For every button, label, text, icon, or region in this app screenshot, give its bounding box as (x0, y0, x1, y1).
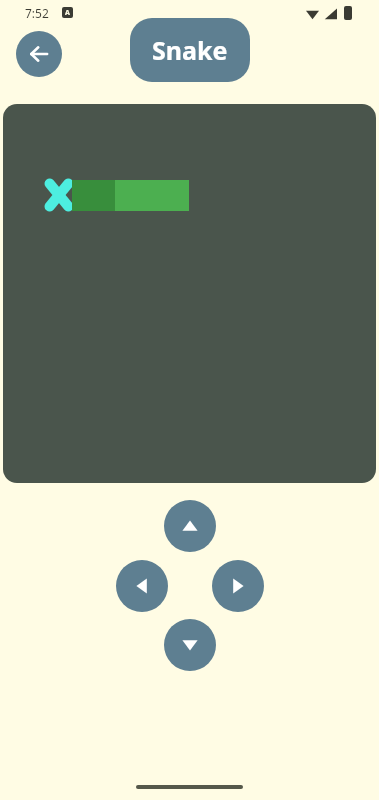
staticText: A (65, 8, 70, 18)
button[interactable]: Move down (164, 619, 216, 671)
button[interactable]: Move right (212, 560, 264, 612)
button[interactable]: Move left (116, 560, 168, 612)
button[interactable]: Move up (164, 500, 216, 552)
staticText: 7:52 (25, 5, 49, 21)
staticText: Snake (152, 33, 228, 67)
button[interactable]: Back (16, 31, 62, 77)
button[interactable]: Snake (130, 18, 250, 82)
